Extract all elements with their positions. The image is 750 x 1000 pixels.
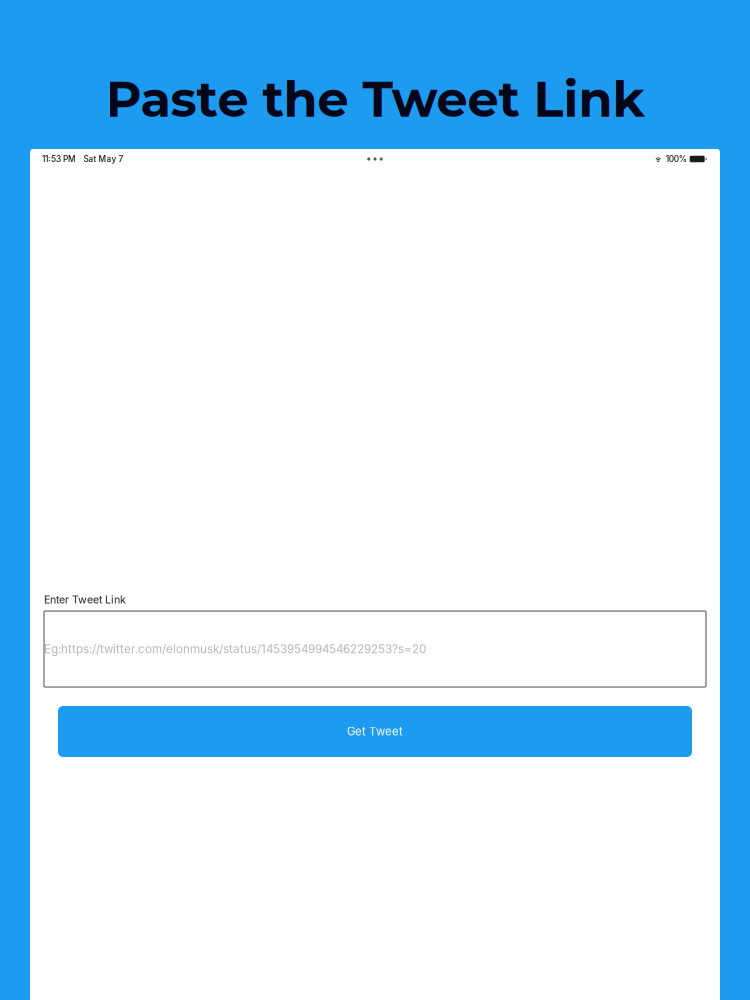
staticText: Enter Tweet Link (44, 593, 126, 606)
button[interactable]: Get Tweet (30, 706, 720, 757)
staticText: Get Tweet (347, 725, 403, 738)
button[interactable]: Eg:https://twitter.com/elonmusk/status/1… (30, 611, 720, 687)
staticText: 100% (666, 154, 687, 164)
staticText: Paste the Tweet Link (105, 69, 644, 129)
staticText: 11:53 PM (42, 154, 76, 164)
staticText: Eg:https://twitter.com/elonmusk/status/1… (44, 642, 426, 656)
staticText: Sat May 7 (83, 154, 123, 164)
